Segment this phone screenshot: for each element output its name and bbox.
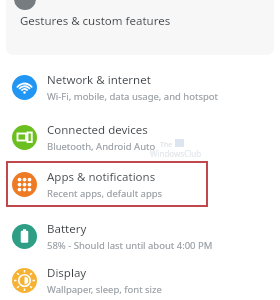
staticText: Network & internet: [47, 72, 151, 88]
button[interactable]: Apps and notifications: [12, 161, 208, 207]
button[interactable]: Battery: [0, 212, 280, 260]
staticText: Connected devices: [47, 122, 148, 138]
button[interactable]: Connected devices: [12, 113, 280, 161]
button[interactable]: Connected devices: [0, 113, 280, 161]
staticText: Bluetooth, Android Auto: [47, 140, 156, 153]
button[interactable]: Battery: [12, 212, 280, 260]
staticText: Wi-Fi, mobile, data usage, and hotspot: [47, 90, 218, 103]
staticText: Wallpaper, sleep, font size: [47, 283, 162, 296]
staticText: The: [160, 140, 173, 150]
button[interactable]: Gestures & custom features: [6, 0, 274, 55]
staticText: WindowsClub: [150, 148, 202, 159]
other: Connected devices: [12, 125, 37, 150]
button[interactable]: Network and internet: [0, 61, 280, 113]
button[interactable]: Display: [12, 260, 280, 300]
other: Display: [12, 268, 37, 293]
staticText: Battery: [47, 221, 87, 237]
staticText: 58% - Should last until about 4:00 PM: [47, 239, 213, 252]
button[interactable]: Display: [0, 260, 280, 300]
staticText: Gestures & custom features: [20, 13, 171, 29]
other: Network and internet: [12, 75, 37, 100]
staticText: Apps & notifications: [47, 169, 156, 185]
staticText: Recent apps, default apps: [47, 187, 163, 200]
other: Apps and notifications: [12, 172, 37, 197]
staticText: Display: [47, 265, 87, 281]
button[interactable]: Network and internet: [12, 61, 280, 113]
other: Battery: [12, 224, 37, 249]
